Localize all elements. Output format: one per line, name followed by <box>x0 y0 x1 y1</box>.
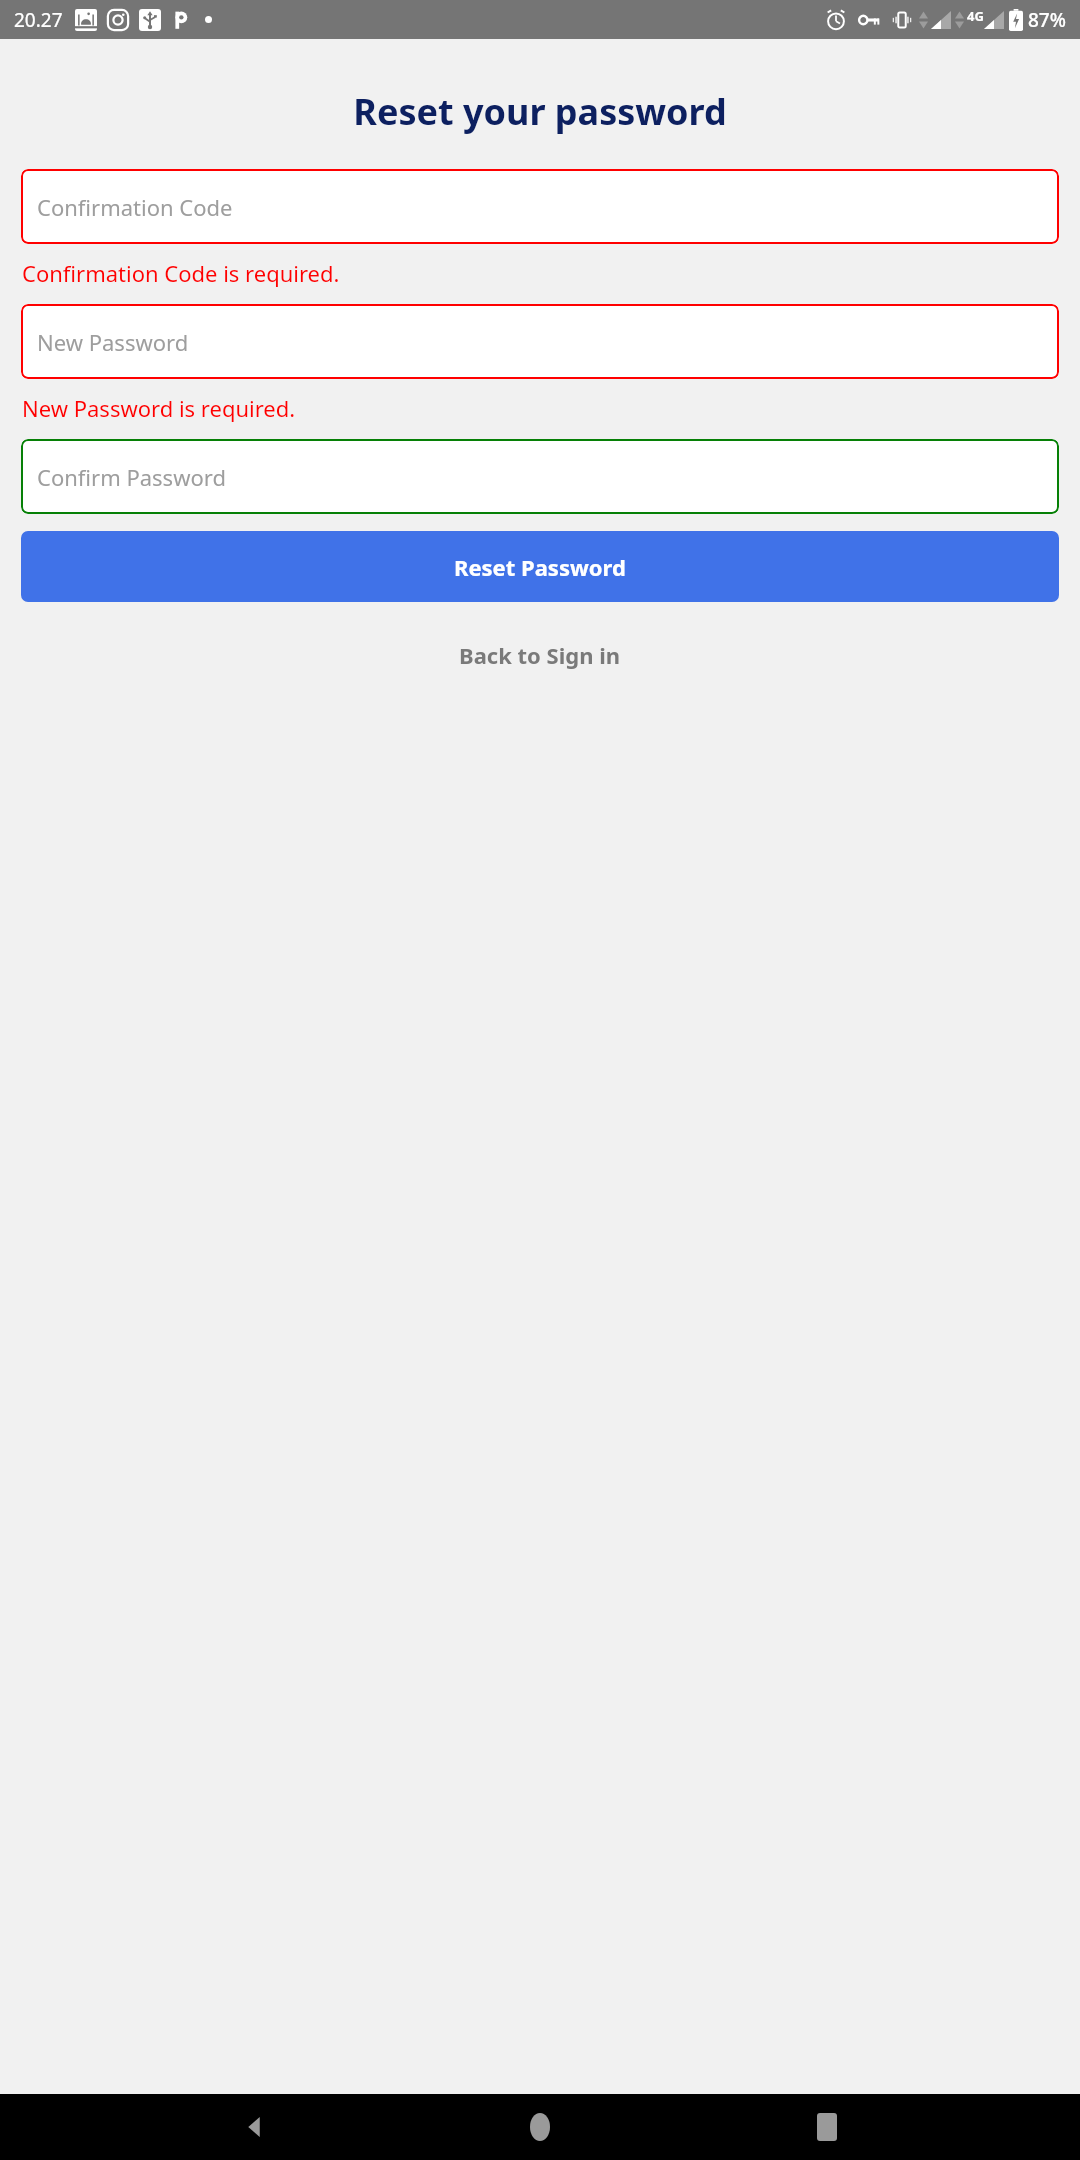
button[interactable]: Reset Password <box>21 531 1059 602</box>
staticText: New Password <box>37 327 189 357</box>
staticText: Back to Sign in <box>459 640 621 670</box>
staticText: Confirmation Code is required. <box>22 258 1080 288</box>
button[interactable]: Home <box>507 2094 573 2160</box>
staticText: Reset Password <box>454 552 626 582</box>
staticText: 4G <box>967 7 984 25</box>
button[interactable]: Back to Sign in <box>0 630 1080 680</box>
button[interactable]: Back <box>221 2094 287 2160</box>
staticText: New Password is required. <box>22 393 1080 423</box>
button[interactable]: Confirm Password <box>21 439 1059 514</box>
staticText: Confirmation Code <box>37 192 233 222</box>
button[interactable]: Recent apps <box>794 2094 860 2160</box>
staticText: Reset your password <box>0 87 1080 136</box>
staticText: 20.27 <box>14 7 63 33</box>
button[interactable]: Confirmation Code <box>21 169 1059 244</box>
button[interactable]: New Password <box>21 304 1059 379</box>
staticText: Confirm Password <box>37 462 226 492</box>
staticText: 87% <box>1028 7 1066 33</box>
